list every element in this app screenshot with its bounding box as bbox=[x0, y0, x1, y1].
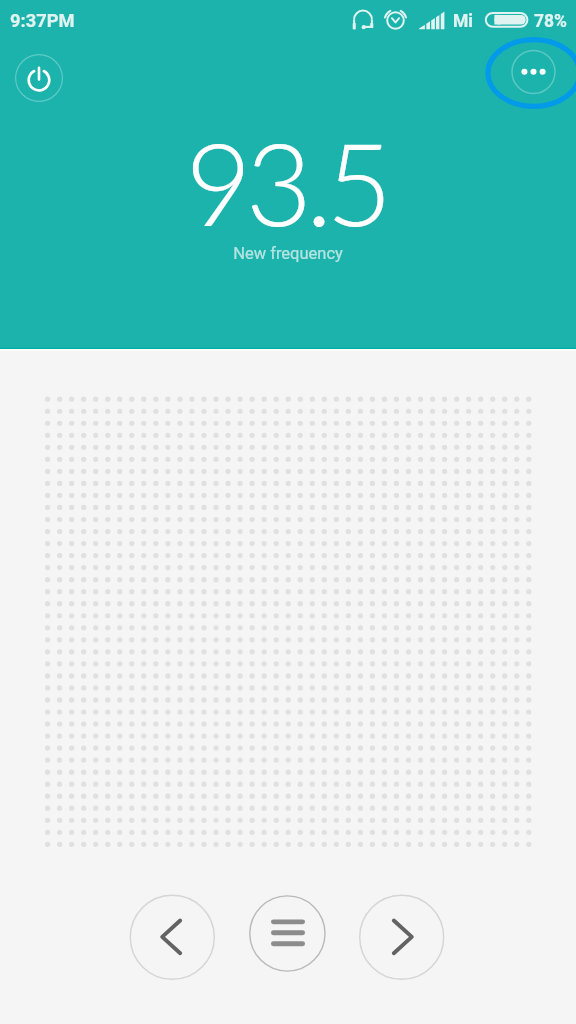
button[interactable]: Station list bbox=[250, 896, 326, 972]
button[interactable]: More options bbox=[490, 28, 576, 115]
staticText: New frequency bbox=[0, 244, 576, 263]
button[interactable]: Power bbox=[15, 54, 63, 102]
button[interactable]: Previous station bbox=[130, 895, 215, 980]
staticText: Mi bbox=[453, 11, 473, 32]
staticText: 9:37PM bbox=[10, 10, 75, 31]
staticText: 78% bbox=[534, 11, 568, 32]
staticText: 93.5 bbox=[0, 113, 574, 250]
button[interactable]: Next station bbox=[359, 895, 444, 980]
